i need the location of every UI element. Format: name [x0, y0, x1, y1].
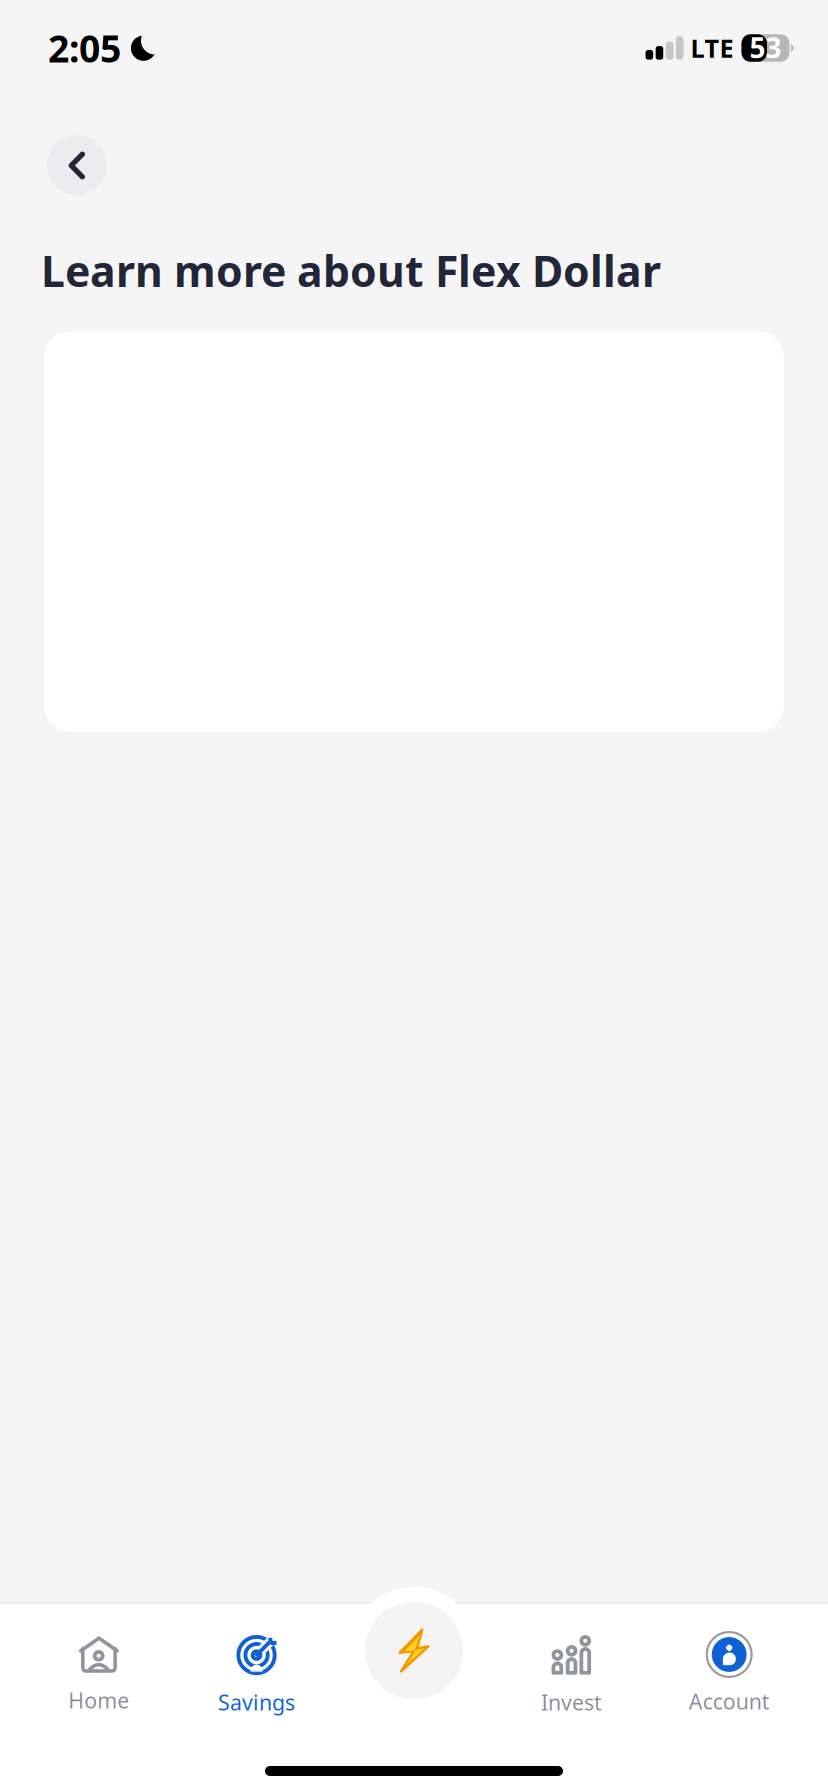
staticText: 53: [749, 29, 781, 66]
button[interactable]: Home: [20, 1635, 178, 1738]
staticText: Invest: [541, 1688, 602, 1716]
staticText: Account: [689, 1687, 770, 1715]
staticText: Home: [68, 1686, 129, 1714]
staticText: Learn more about Flex Dollar: [41, 242, 661, 299]
button[interactable]: Back: [47, 135, 107, 195]
button[interactable]: Savings: [178, 1635, 335, 1738]
staticText: LTE: [690, 31, 733, 65]
button[interactable]: Account: [650, 1635, 808, 1738]
button[interactable]: Invest: [493, 1635, 650, 1738]
staticText: 2:05: [48, 23, 121, 73]
button[interactable]: Quick actions: [350, 1587, 477, 1714]
staticText: Savings: [218, 1688, 295, 1716]
